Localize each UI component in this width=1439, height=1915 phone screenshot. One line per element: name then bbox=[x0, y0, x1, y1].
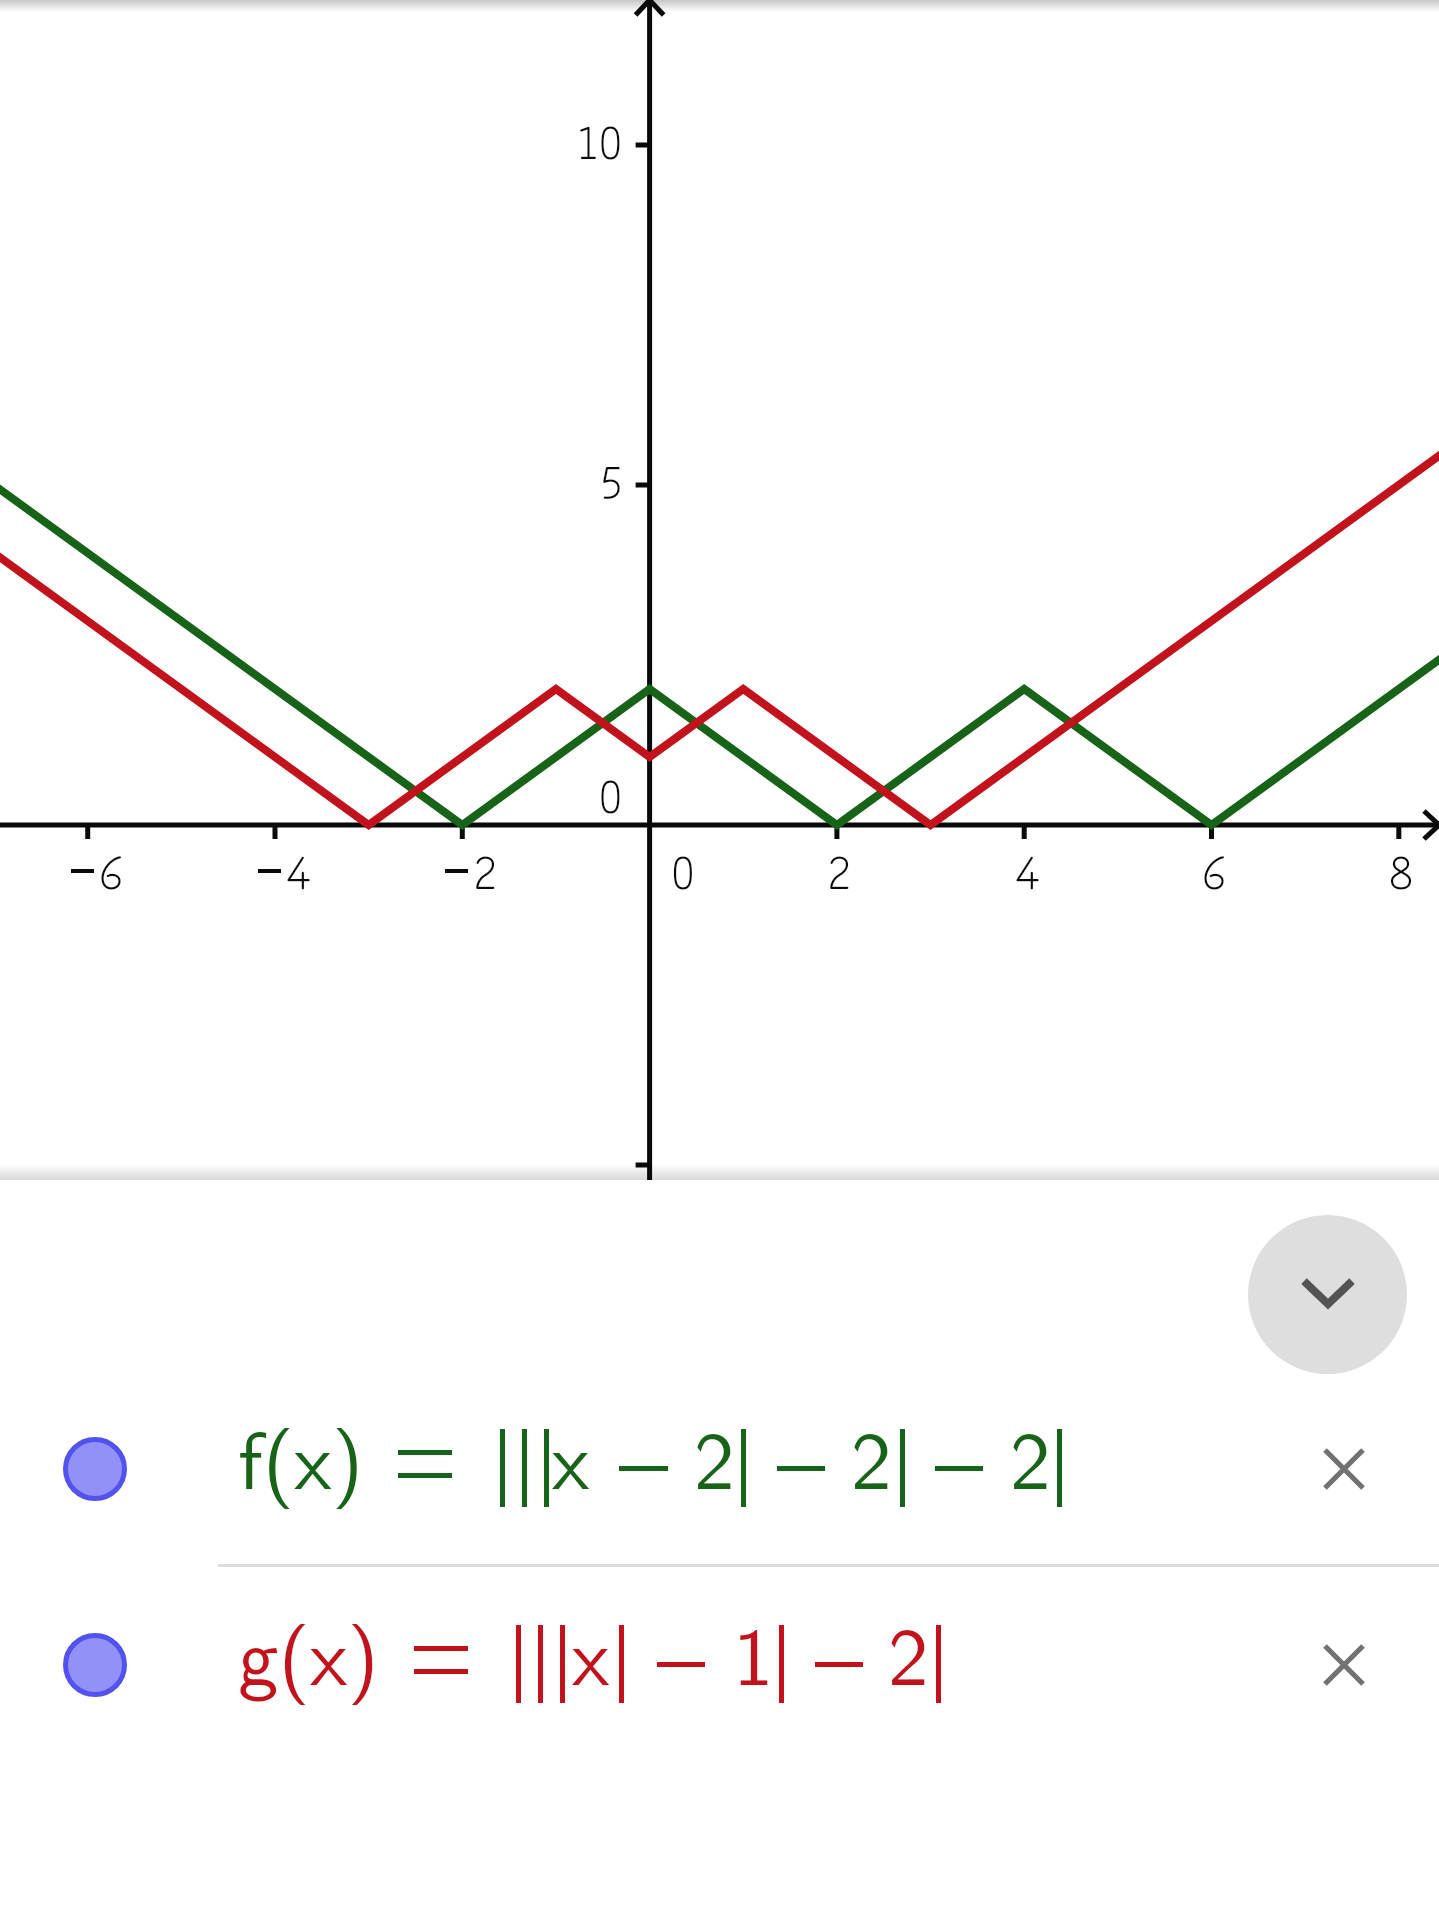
button[interactable]: Delete expression bbox=[1289, 1610, 1399, 1720]
staticText: 1 bbox=[733, 1592, 774, 1711]
staticText: 6 bbox=[1154, 836, 1274, 903]
staticText: 2 bbox=[694, 1396, 735, 1515]
staticText: 6 bbox=[51, 836, 171, 903]
button[interactable]: Delete expression bbox=[1289, 1414, 1399, 1524]
staticText: 0 bbox=[492, 760, 622, 827]
staticText: 8 bbox=[1341, 836, 1439, 903]
staticText: 2 bbox=[425, 836, 545, 903]
staticText: x bbox=[552, 1396, 590, 1515]
staticText: 10 bbox=[492, 106, 622, 173]
staticText: 2 bbox=[888, 1592, 929, 1711]
staticText: 2 bbox=[1010, 1396, 1051, 1515]
staticText: f(x) bbox=[238, 1396, 364, 1515]
button[interactable]: f(x) bbox=[0, 1371, 1439, 1567]
staticText: 4 bbox=[238, 836, 358, 903]
staticText: g(x) bbox=[238, 1592, 379, 1711]
staticText: 4 bbox=[967, 836, 1087, 903]
staticText: 5 bbox=[492, 446, 622, 513]
button[interactable]: g(x) bbox=[0, 1567, 1439, 1763]
staticText: 0 bbox=[623, 836, 743, 903]
staticText: x bbox=[572, 1592, 610, 1711]
staticText: 2 bbox=[779, 836, 899, 903]
button[interactable]: Collapse expression list bbox=[1248, 1215, 1407, 1374]
staticText: 2 bbox=[851, 1396, 892, 1515]
